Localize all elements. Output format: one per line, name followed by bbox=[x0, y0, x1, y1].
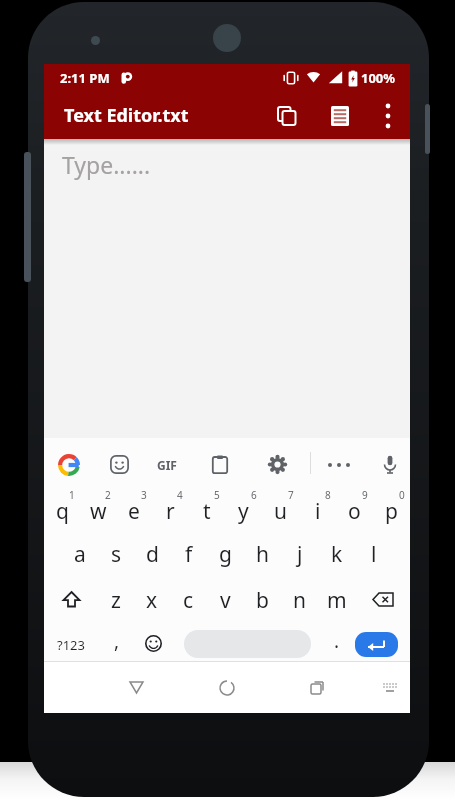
staticText: i bbox=[315, 497, 321, 526]
staticText: Text Editor.txt bbox=[64, 103, 189, 128]
button[interactable]: x bbox=[134, 574, 170, 618]
staticText: 5 bbox=[214, 488, 220, 502]
button[interactable] bbox=[370, 438, 410, 487]
staticText: g bbox=[219, 540, 232, 569]
button[interactable]: f bbox=[170, 531, 207, 574]
button[interactable] bbox=[200, 438, 240, 487]
button[interactable] bbox=[257, 438, 297, 487]
button[interactable]: p bbox=[373, 487, 410, 531]
staticText: c bbox=[183, 586, 194, 615]
staticText: r bbox=[166, 497, 175, 526]
button[interactable]: r bbox=[152, 487, 188, 531]
button[interactable] bbox=[135, 618, 172, 661]
button[interactable] bbox=[184, 630, 311, 658]
button[interactable] bbox=[265, 94, 309, 138]
button[interactable] bbox=[49, 438, 89, 487]
button[interactable]: j bbox=[281, 531, 318, 574]
button[interactable]: v bbox=[207, 574, 244, 618]
staticText: v bbox=[220, 586, 231, 615]
staticText: l bbox=[371, 540, 377, 569]
button[interactable] bbox=[44, 574, 98, 618]
staticText: s bbox=[111, 540, 122, 569]
button[interactable]: q bbox=[44, 487, 80, 531]
staticText: 8 bbox=[325, 488, 331, 502]
button[interactable] bbox=[99, 438, 139, 487]
button[interactable]: ?123 bbox=[44, 618, 98, 661]
staticText: ?123 bbox=[57, 636, 85, 654]
button[interactable] bbox=[374, 102, 402, 130]
button[interactable]: l bbox=[355, 531, 392, 574]
button[interactable]: . bbox=[318, 618, 355, 661]
staticText: t bbox=[203, 497, 211, 526]
staticText: , bbox=[114, 628, 120, 654]
staticText: y bbox=[238, 497, 249, 526]
button[interactable] bbox=[374, 662, 406, 713]
staticText: 3 bbox=[141, 488, 147, 502]
button[interactable]: a bbox=[62, 531, 98, 574]
staticText: u bbox=[274, 497, 287, 526]
staticText: 2 bbox=[105, 488, 111, 502]
button[interactable]: i bbox=[299, 487, 336, 531]
button[interactable]: GIF bbox=[147, 438, 187, 487]
staticText: n bbox=[293, 586, 306, 615]
staticText: . bbox=[334, 628, 340, 654]
button[interactable]: w bbox=[80, 487, 116, 531]
button[interactable]: u bbox=[262, 487, 299, 531]
button[interactable] bbox=[355, 574, 410, 618]
button[interactable]: y bbox=[225, 487, 262, 531]
staticText: m bbox=[327, 586, 347, 615]
button[interactable] bbox=[207, 662, 247, 713]
staticText: 6 bbox=[251, 488, 257, 502]
staticText: f bbox=[185, 540, 193, 569]
button[interactable]: k bbox=[318, 531, 355, 574]
staticText: b bbox=[256, 586, 269, 615]
button[interactable]: e bbox=[116, 487, 152, 531]
staticText: 7 bbox=[288, 488, 294, 502]
staticText: 1 bbox=[69, 488, 75, 502]
staticText: h bbox=[256, 540, 269, 569]
staticText: 9 bbox=[362, 488, 368, 502]
button[interactable] bbox=[319, 438, 359, 487]
staticText: Type...... bbox=[62, 149, 151, 180]
staticText: 100% bbox=[361, 69, 396, 87]
staticText: p bbox=[385, 497, 398, 526]
staticText: 0 bbox=[399, 488, 405, 502]
staticText: 4 bbox=[177, 488, 183, 502]
button[interactable]: n bbox=[281, 574, 318, 618]
button[interactable] bbox=[355, 632, 398, 657]
button[interactable] bbox=[116, 662, 156, 713]
staticText: w bbox=[90, 497, 107, 526]
button[interactable]: s bbox=[98, 531, 134, 574]
staticText: o bbox=[348, 497, 361, 526]
button[interactable]: m bbox=[318, 574, 355, 618]
button[interactable]: t bbox=[188, 487, 225, 531]
staticText: q bbox=[56, 497, 69, 526]
button[interactable]: d bbox=[134, 531, 170, 574]
staticText: z bbox=[111, 586, 121, 615]
button[interactable]: c bbox=[170, 574, 207, 618]
staticText: e bbox=[128, 497, 140, 526]
staticText: x bbox=[146, 586, 158, 615]
button[interactable]: b bbox=[244, 574, 281, 618]
button[interactable] bbox=[297, 662, 337, 713]
staticText: GIF bbox=[157, 457, 177, 473]
staticText: k bbox=[331, 540, 343, 569]
staticText: j bbox=[297, 540, 303, 569]
staticText: d bbox=[146, 540, 159, 569]
button[interactable]: g bbox=[207, 531, 244, 574]
button[interactable]: , bbox=[98, 618, 135, 661]
button[interactable]: h bbox=[244, 531, 281, 574]
staticText: a bbox=[74, 540, 86, 569]
button[interactable] bbox=[318, 94, 362, 138]
staticText: 2:11 PM bbox=[60, 69, 110, 87]
button[interactable]: o bbox=[336, 487, 373, 531]
button[interactable]: z bbox=[98, 574, 134, 618]
